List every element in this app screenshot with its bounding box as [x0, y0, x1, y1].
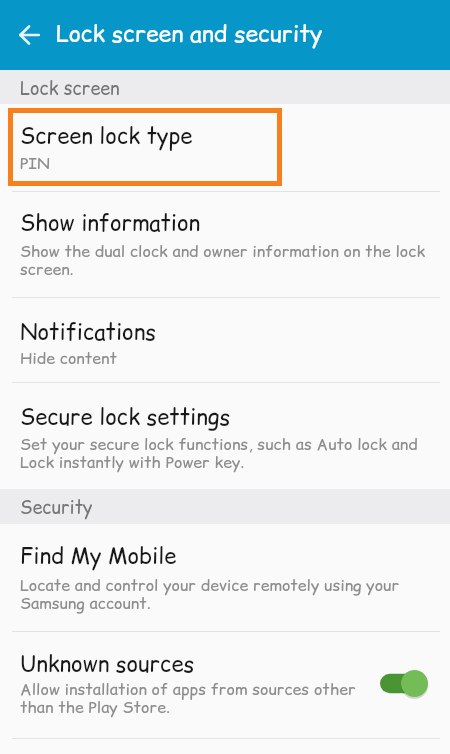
- button[interactable]: Unknown sources: [0, 632, 450, 738]
- button[interactable]: Secure lock settings: [0, 383, 450, 489]
- staticText: Notifications: [20, 321, 156, 346]
- staticText: Allow installation of apps from sources …: [20, 681, 380, 717]
- button[interactable]: Find My Mobile: [0, 524, 450, 631]
- staticText: Secure lock settings: [20, 406, 231, 431]
- staticText: Unknown sources: [20, 653, 195, 678]
- staticText: Set your secure lock functions, such as …: [20, 436, 436, 472]
- staticText: Show the dual clock and owner informatio…: [20, 243, 436, 279]
- staticText: Screen lock type: [20, 125, 193, 150]
- staticText: Locate and control your device remotely …: [20, 577, 436, 613]
- button[interactable]: Notifications: [0, 298, 450, 382]
- staticText: Show information: [20, 212, 201, 237]
- button[interactable]: Unknown sources switch: [380, 670, 428, 697]
- button[interactable]: Show information: [0, 192, 450, 297]
- button[interactable]: Screen lock type: [0, 104, 450, 191]
- staticText: Lock screen and security: [56, 22, 323, 48]
- staticText: Find My Mobile: [20, 545, 177, 570]
- staticText: PIN: [20, 155, 50, 173]
- button[interactable]: Back: [0, 0, 56, 70]
- staticText: Security: [20, 499, 93, 519]
- staticText: Lock screen: [20, 80, 120, 100]
- staticText: Hide content: [20, 350, 117, 368]
